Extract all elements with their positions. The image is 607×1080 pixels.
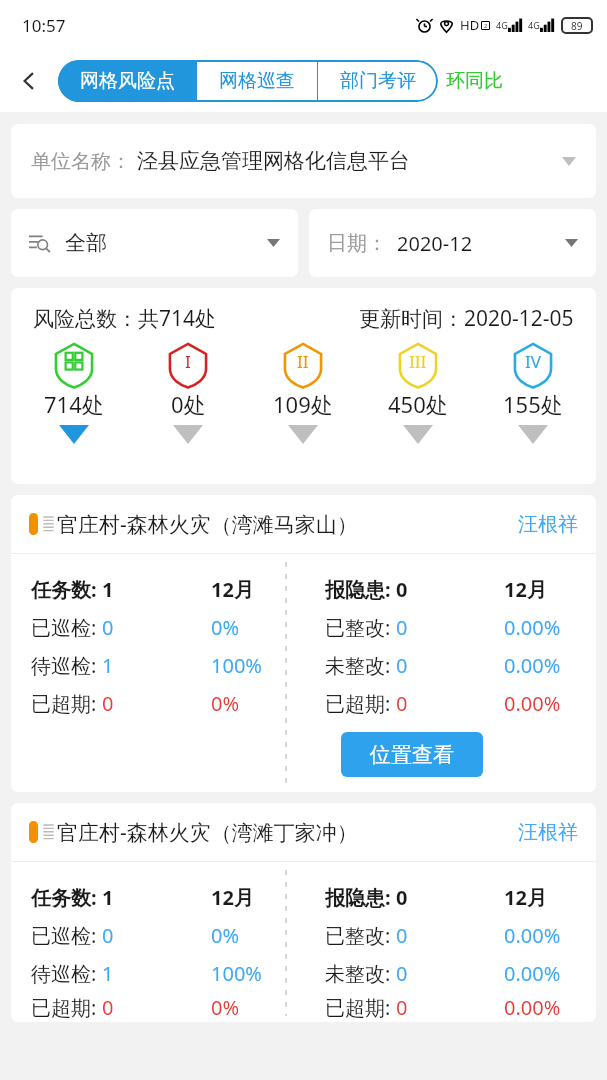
button[interactable]: I [131,341,245,444]
button[interactable]: 网格风险点 [58,60,196,102]
staticText: 更新时间：2020-12-05 [359,304,574,333]
staticText: 109处 [273,389,333,419]
staticText: 网格巡查 [219,69,295,93]
staticText: 已巡检: [31,614,102,641]
staticText: 4G [528,19,540,31]
staticText: 网格风险点 [80,69,175,93]
button[interactable]: 网格巡查 [197,60,317,102]
staticText: 已巡检: [31,922,102,949]
staticText: 0 [102,690,114,717]
button[interactable]: III [360,341,475,444]
staticText: 报隐患: [325,576,396,603]
staticText: 未整改: [325,960,396,987]
staticText: 报隐患: [325,884,396,911]
staticText: 0% [211,922,240,949]
button[interactable]: 位置查看 [341,732,483,777]
button[interactable]: 官庄村-森林火灾（湾滩马家山） [11,495,596,792]
button[interactable]: 日期： [309,209,596,277]
staticText: 1 [102,960,114,987]
staticText: 全部 [65,230,107,256]
staticText: 风险总数：共714处 [33,304,217,333]
staticText: 汪根祥 [518,820,578,845]
staticText: 部门考评 [340,69,416,93]
staticText: 0.00% [504,652,561,679]
button[interactable]: IV [475,341,590,444]
staticText: 12月 [504,576,547,603]
staticText: 0.00% [504,614,561,641]
staticText: HD [460,16,480,34]
staticText: I [185,350,191,373]
staticText: 2020-12 [397,230,473,257]
staticText: 0.00% [504,922,561,949]
staticText: 任务数: [31,576,102,603]
staticText: 待巡检: [31,960,102,987]
staticText: 0.00% [504,690,561,717]
staticText: 12月 [504,884,547,911]
staticText: 4G [496,19,508,31]
staticText: 未整改: [325,652,396,679]
staticText: 官庄村-森林火灾（湾滩马家山） [57,510,358,539]
button[interactable]: 714处 [17,341,131,444]
staticText: 0 [102,994,114,1021]
staticText: 泾县应急管理网格化信息平台 [137,148,410,174]
staticText: 已超期: [325,994,396,1021]
button[interactable]: 官庄村-森林火灾（湾滩丁家冲） [11,803,596,1022]
staticText: 89 [571,19,583,33]
button[interactable]: Back [0,50,58,112]
staticText: 0 [396,576,408,603]
staticText: 0 [396,960,408,987]
staticText: 官庄村-森林火灾（湾滩丁家冲） [57,818,358,847]
button[interactable]: 全部 [11,209,298,277]
staticText: 0% [211,994,240,1021]
staticText: 0 [396,614,408,641]
staticText: 0 [396,922,408,949]
staticText: 任务数: [31,884,102,911]
staticText: 12月 [211,884,254,911]
staticText: 0.00% [504,994,561,1021]
staticText: 0% [211,614,240,641]
staticText: III [409,350,427,373]
staticText: 2 [484,22,488,30]
staticText: 已超期: [325,690,396,717]
staticText: 已超期: [31,994,102,1021]
staticText: 0 [396,652,408,679]
staticText: 0 [102,614,114,641]
staticText: 位置查看 [370,742,454,768]
staticText: 已超期: [31,690,102,717]
staticText: 0 [102,922,114,949]
staticText: 10:57 [22,14,66,37]
button[interactable]: 单位名称： [11,124,596,198]
staticText: 100% [211,652,262,679]
staticText: 1 [102,652,114,679]
staticText: 450处 [388,389,448,419]
staticText: 0.00% [504,960,561,987]
staticText: 12月 [211,576,254,603]
button[interactable]: 部门考评 [318,60,438,102]
staticText: 1 [102,576,114,603]
staticText: 待巡检: [31,652,102,679]
button[interactable]: II [245,341,360,444]
button[interactable]: 环同比 [446,69,503,93]
staticText: 0 [396,884,408,911]
staticText: 已整改: [325,922,396,949]
staticText: 100% [211,960,262,987]
staticText: 155处 [503,389,563,419]
staticText: 0处 [171,389,206,419]
staticText: 1 [102,884,114,911]
staticText: 0% [211,690,240,717]
staticText: 单位名称： [31,149,131,174]
staticText: 日期： [327,231,387,256]
staticText: II [297,350,309,373]
staticText: 0 [396,690,408,717]
staticText: 已整改: [325,614,396,641]
staticText: 汪根祥 [518,512,578,537]
staticText: 714处 [44,389,104,419]
staticText: 0 [396,994,408,1021]
staticText: IV [525,350,541,373]
